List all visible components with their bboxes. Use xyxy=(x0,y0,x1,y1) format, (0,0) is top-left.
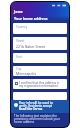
button[interactable]: City xyxy=(13,66,67,76)
staticText: Street xyxy=(16,39,25,43)
button[interactable]: Unit xyxy=(13,53,67,63)
staticText: City xyxy=(16,67,22,71)
staticText: Minneapolis xyxy=(16,71,37,76)
staticText: Unit xyxy=(16,55,22,59)
staticText: provisions and terms about your xyxy=(14,117,60,121)
staticText: Jane xyxy=(14,9,23,14)
staticText: Your home address xyxy=(14,16,48,21)
staticText: my registration information xyxy=(19,84,59,88)
button[interactable] xyxy=(13,92,67,100)
staticText: 221b Baker Street xyxy=(16,44,46,49)
staticText: Country xyxy=(16,25,28,29)
staticText: home address xyxy=(14,120,35,124)
button[interactable]: I confirm that this address is xyxy=(13,79,67,89)
staticText: verify. Residents accept xyxy=(19,104,52,108)
staticText: The following text explains the xyxy=(14,114,57,118)
button[interactable]: Country xyxy=(13,23,67,34)
other: Status icons xyxy=(52,4,66,7)
staticText: I confirm that this address is xyxy=(19,81,60,85)
staticText: Your info will be used to xyxy=(19,101,53,105)
button[interactable]: Your info will be used to xyxy=(11,100,69,113)
button[interactable]: Street xyxy=(13,37,67,50)
staticText: Read the Terms xyxy=(19,107,43,111)
